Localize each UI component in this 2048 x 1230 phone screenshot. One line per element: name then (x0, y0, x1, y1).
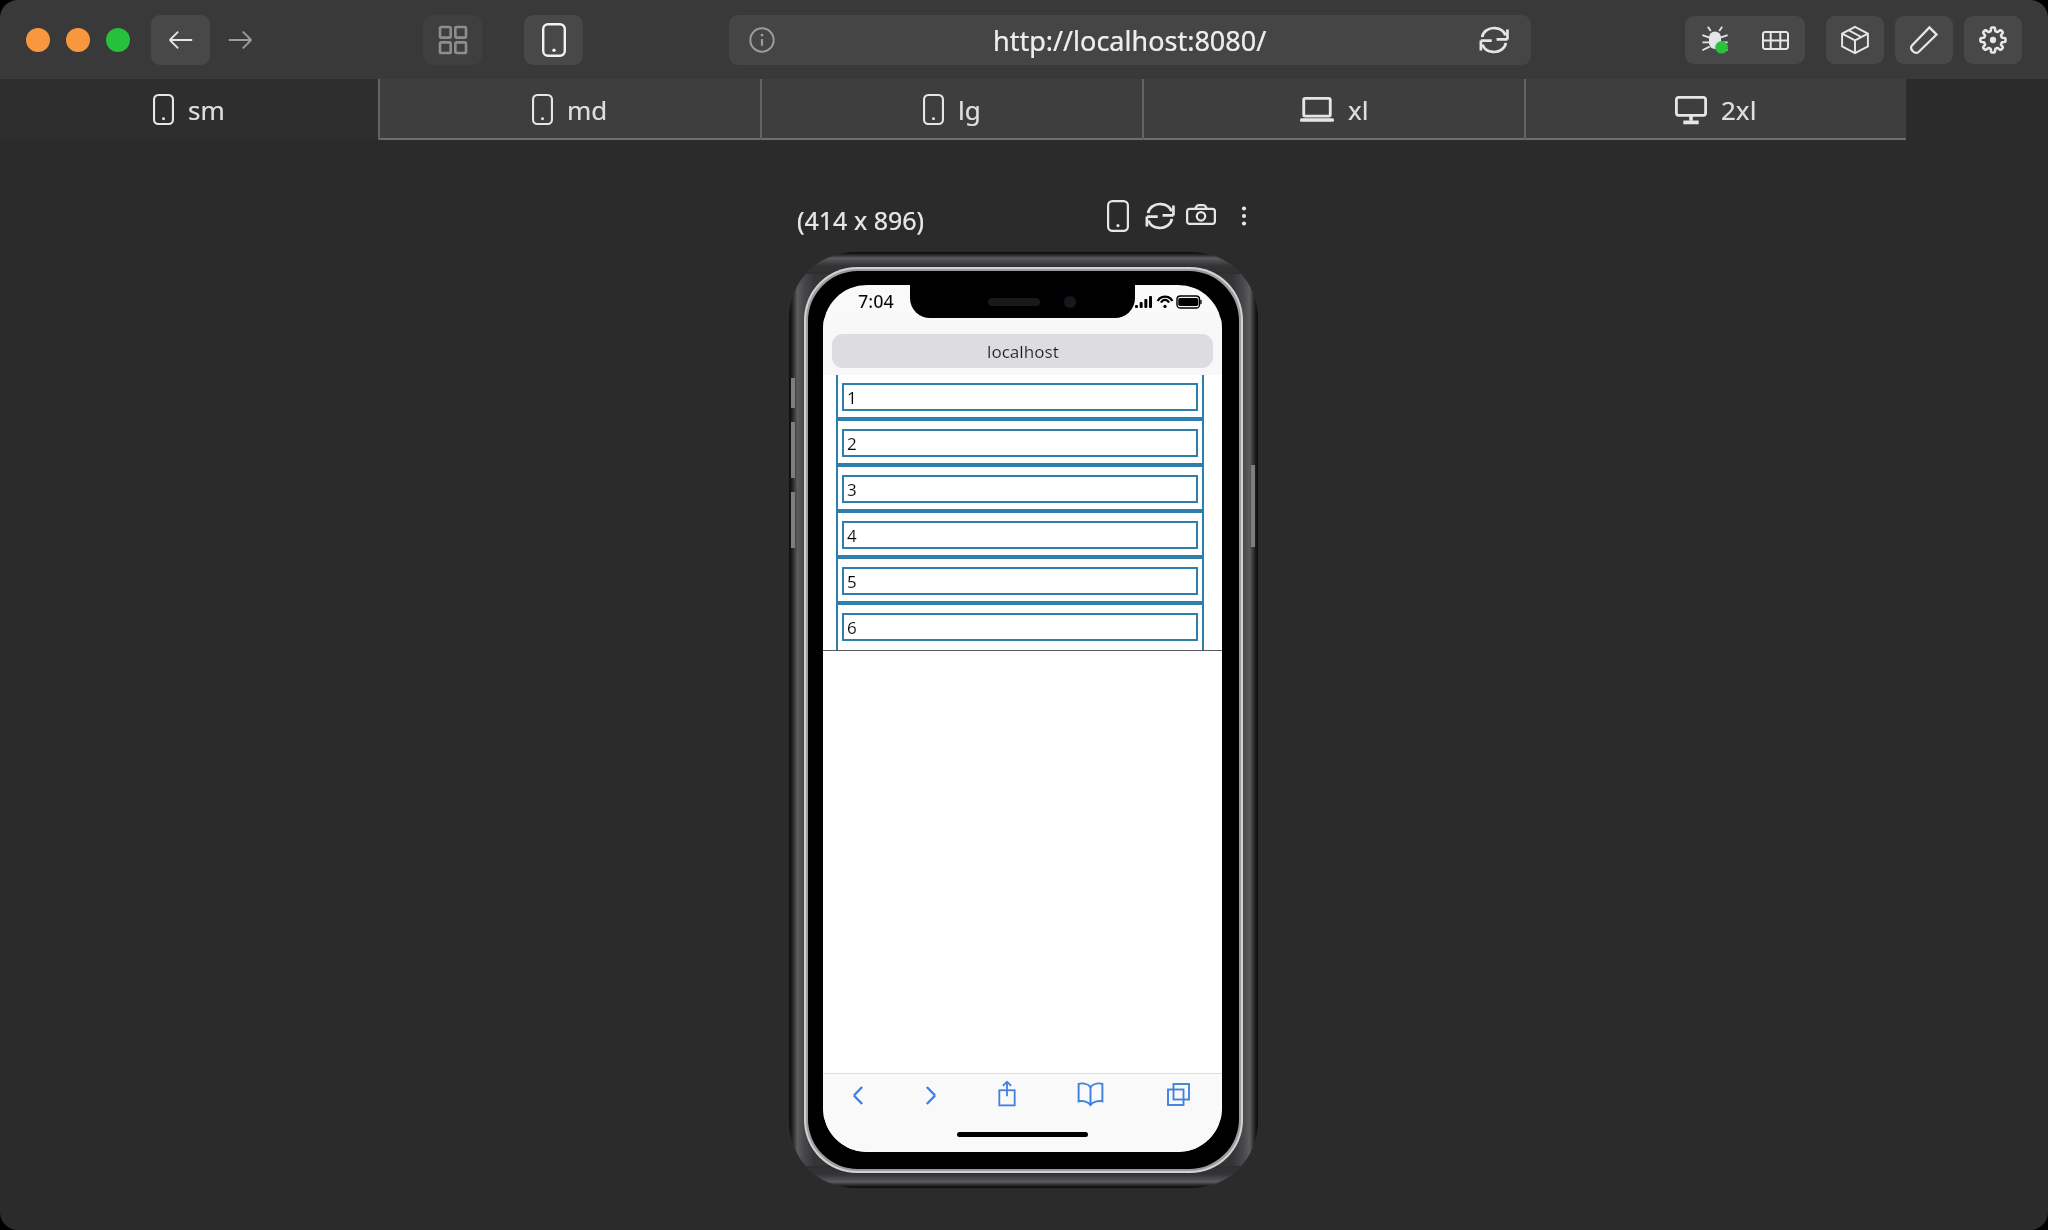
button[interactable]: 6 (843, 614, 1197, 640)
staticText: 1 (847, 386, 857, 409)
button[interactable]: xl (1144, 79, 1524, 140)
staticText: (414 x 896) (797, 203, 925, 237)
staticText: 6 (847, 616, 857, 639)
button[interactable]: Close (26, 28, 50, 52)
staticText: 7:04 (858, 289, 894, 314)
button[interactable]: Device (1096, 197, 1140, 235)
button[interactable]: Share (993, 1076, 1021, 1110)
button[interactable]: 4 (843, 522, 1197, 548)
button[interactable]: Forward (210, 15, 269, 65)
button[interactable]: Rotate (1138, 197, 1182, 235)
button[interactable]: More (1222, 197, 1266, 235)
staticText: md (567, 92, 608, 127)
staticText: 5 (847, 570, 857, 593)
staticText: 3 (847, 478, 857, 501)
staticText: localhost (987, 340, 1059, 363)
button[interactable]: lg (762, 79, 1142, 140)
button[interactable]: 2xl (1526, 79, 1906, 140)
button[interactable]: sm (0, 79, 378, 140)
button[interactable]: Components (1826, 16, 1884, 64)
staticText: http://localhost:8080/ (993, 22, 1267, 59)
button[interactable]: 3 (843, 476, 1197, 502)
button[interactable]: Minimize (66, 28, 90, 52)
button[interactable]: Grid view (423, 15, 482, 65)
button[interactable]: 5 (843, 568, 1197, 594)
button[interactable]: http://localhost:8080/ (729, 15, 1531, 65)
button[interactable]: Responsive view (524, 15, 583, 65)
button[interactable]: Forward (916, 1078, 944, 1112)
button[interactable]: Layout (1745, 16, 1805, 64)
button[interactable]: Screenshot (1179, 197, 1223, 235)
staticText: 2 (847, 432, 857, 455)
staticText: 4 (847, 524, 857, 547)
button[interactable]: Bookmarks (1076, 1077, 1104, 1111)
button[interactable]: Inspect (1685, 16, 1745, 64)
staticText: 2xl (1721, 92, 1757, 127)
button[interactable]: Settings (1964, 16, 2022, 64)
button[interactable]: Back (151, 15, 210, 65)
button[interactable]: Experiments (1895, 16, 1953, 64)
staticText: xl (1348, 92, 1369, 127)
button[interactable]: Maximize (106, 28, 130, 52)
staticText: sm (188, 92, 225, 127)
staticText: lg (958, 92, 981, 127)
button[interactable]: Back (844, 1078, 872, 1112)
button[interactable]: localhost (832, 334, 1213, 368)
button[interactable]: 1 (843, 384, 1197, 410)
button[interactable]: md (380, 79, 760, 140)
button[interactable]: 2 (843, 430, 1197, 456)
button[interactable]: Tabs (1164, 1077, 1192, 1111)
